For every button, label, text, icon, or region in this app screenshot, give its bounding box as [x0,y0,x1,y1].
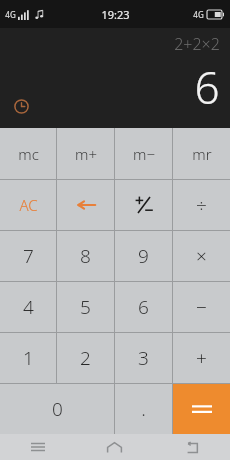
staticText: 1 [23,345,34,371]
button[interactable]: 6 [115,282,172,332]
button[interactable]: Back [153,434,230,460]
button[interactable]: ÷ [173,180,230,230]
staticText: 9 [138,243,149,269]
button[interactable]: m+ [57,128,114,179]
staticText: m+ [75,144,97,164]
staticText: 6 [138,294,149,320]
button[interactable]: Plus minus [115,180,172,230]
button[interactable]: 2 [57,333,114,383]
staticText: AC [19,195,38,215]
button[interactable]: mc [0,128,56,179]
staticText: − [196,294,207,320]
staticText: + [196,345,207,371]
staticText: . [141,396,146,422]
button[interactable]: Equals [173,384,230,434]
button[interactable]: Home [76,434,153,460]
staticText: m− [133,144,155,164]
button[interactable]: × [173,231,230,281]
staticText: mr [192,144,212,164]
staticText: 7 [23,243,34,269]
button[interactable]: . [115,384,172,434]
button[interactable]: m− [115,128,172,179]
button[interactable]: 0 [0,384,114,434]
staticText: 5 [80,294,91,320]
button[interactable]: Menu [0,434,76,460]
staticText: 4 [23,294,34,320]
staticText: 0 [52,396,63,422]
staticText: mc [18,144,39,164]
button[interactable]: History [10,95,32,117]
staticText: 2 [80,345,91,371]
button[interactable]: 5 [57,282,114,332]
button[interactable]: 8 [57,231,114,281]
button[interactable]: + [173,333,230,383]
button[interactable]: AC [0,180,56,230]
button[interactable]: 9 [115,231,172,281]
button[interactable]: mr [173,128,230,179]
staticText: 19:23 [101,7,130,22]
staticText: 2+2×2 [174,33,220,55]
button[interactable]: 1 [0,333,56,383]
staticText: 4G [5,9,16,20]
staticText: 4G [193,9,204,20]
staticText: × [196,243,207,269]
button[interactable]: 7 [0,231,56,281]
button[interactable]: − [173,282,230,332]
staticText: ÷ [196,192,207,218]
staticText: 3 [138,345,149,371]
button[interactable]: 4 [0,282,56,332]
button[interactable]: 3 [115,333,172,383]
button[interactable]: Backspace [57,180,114,230]
staticText: 6 [194,57,220,117]
staticText: 8 [80,243,91,269]
